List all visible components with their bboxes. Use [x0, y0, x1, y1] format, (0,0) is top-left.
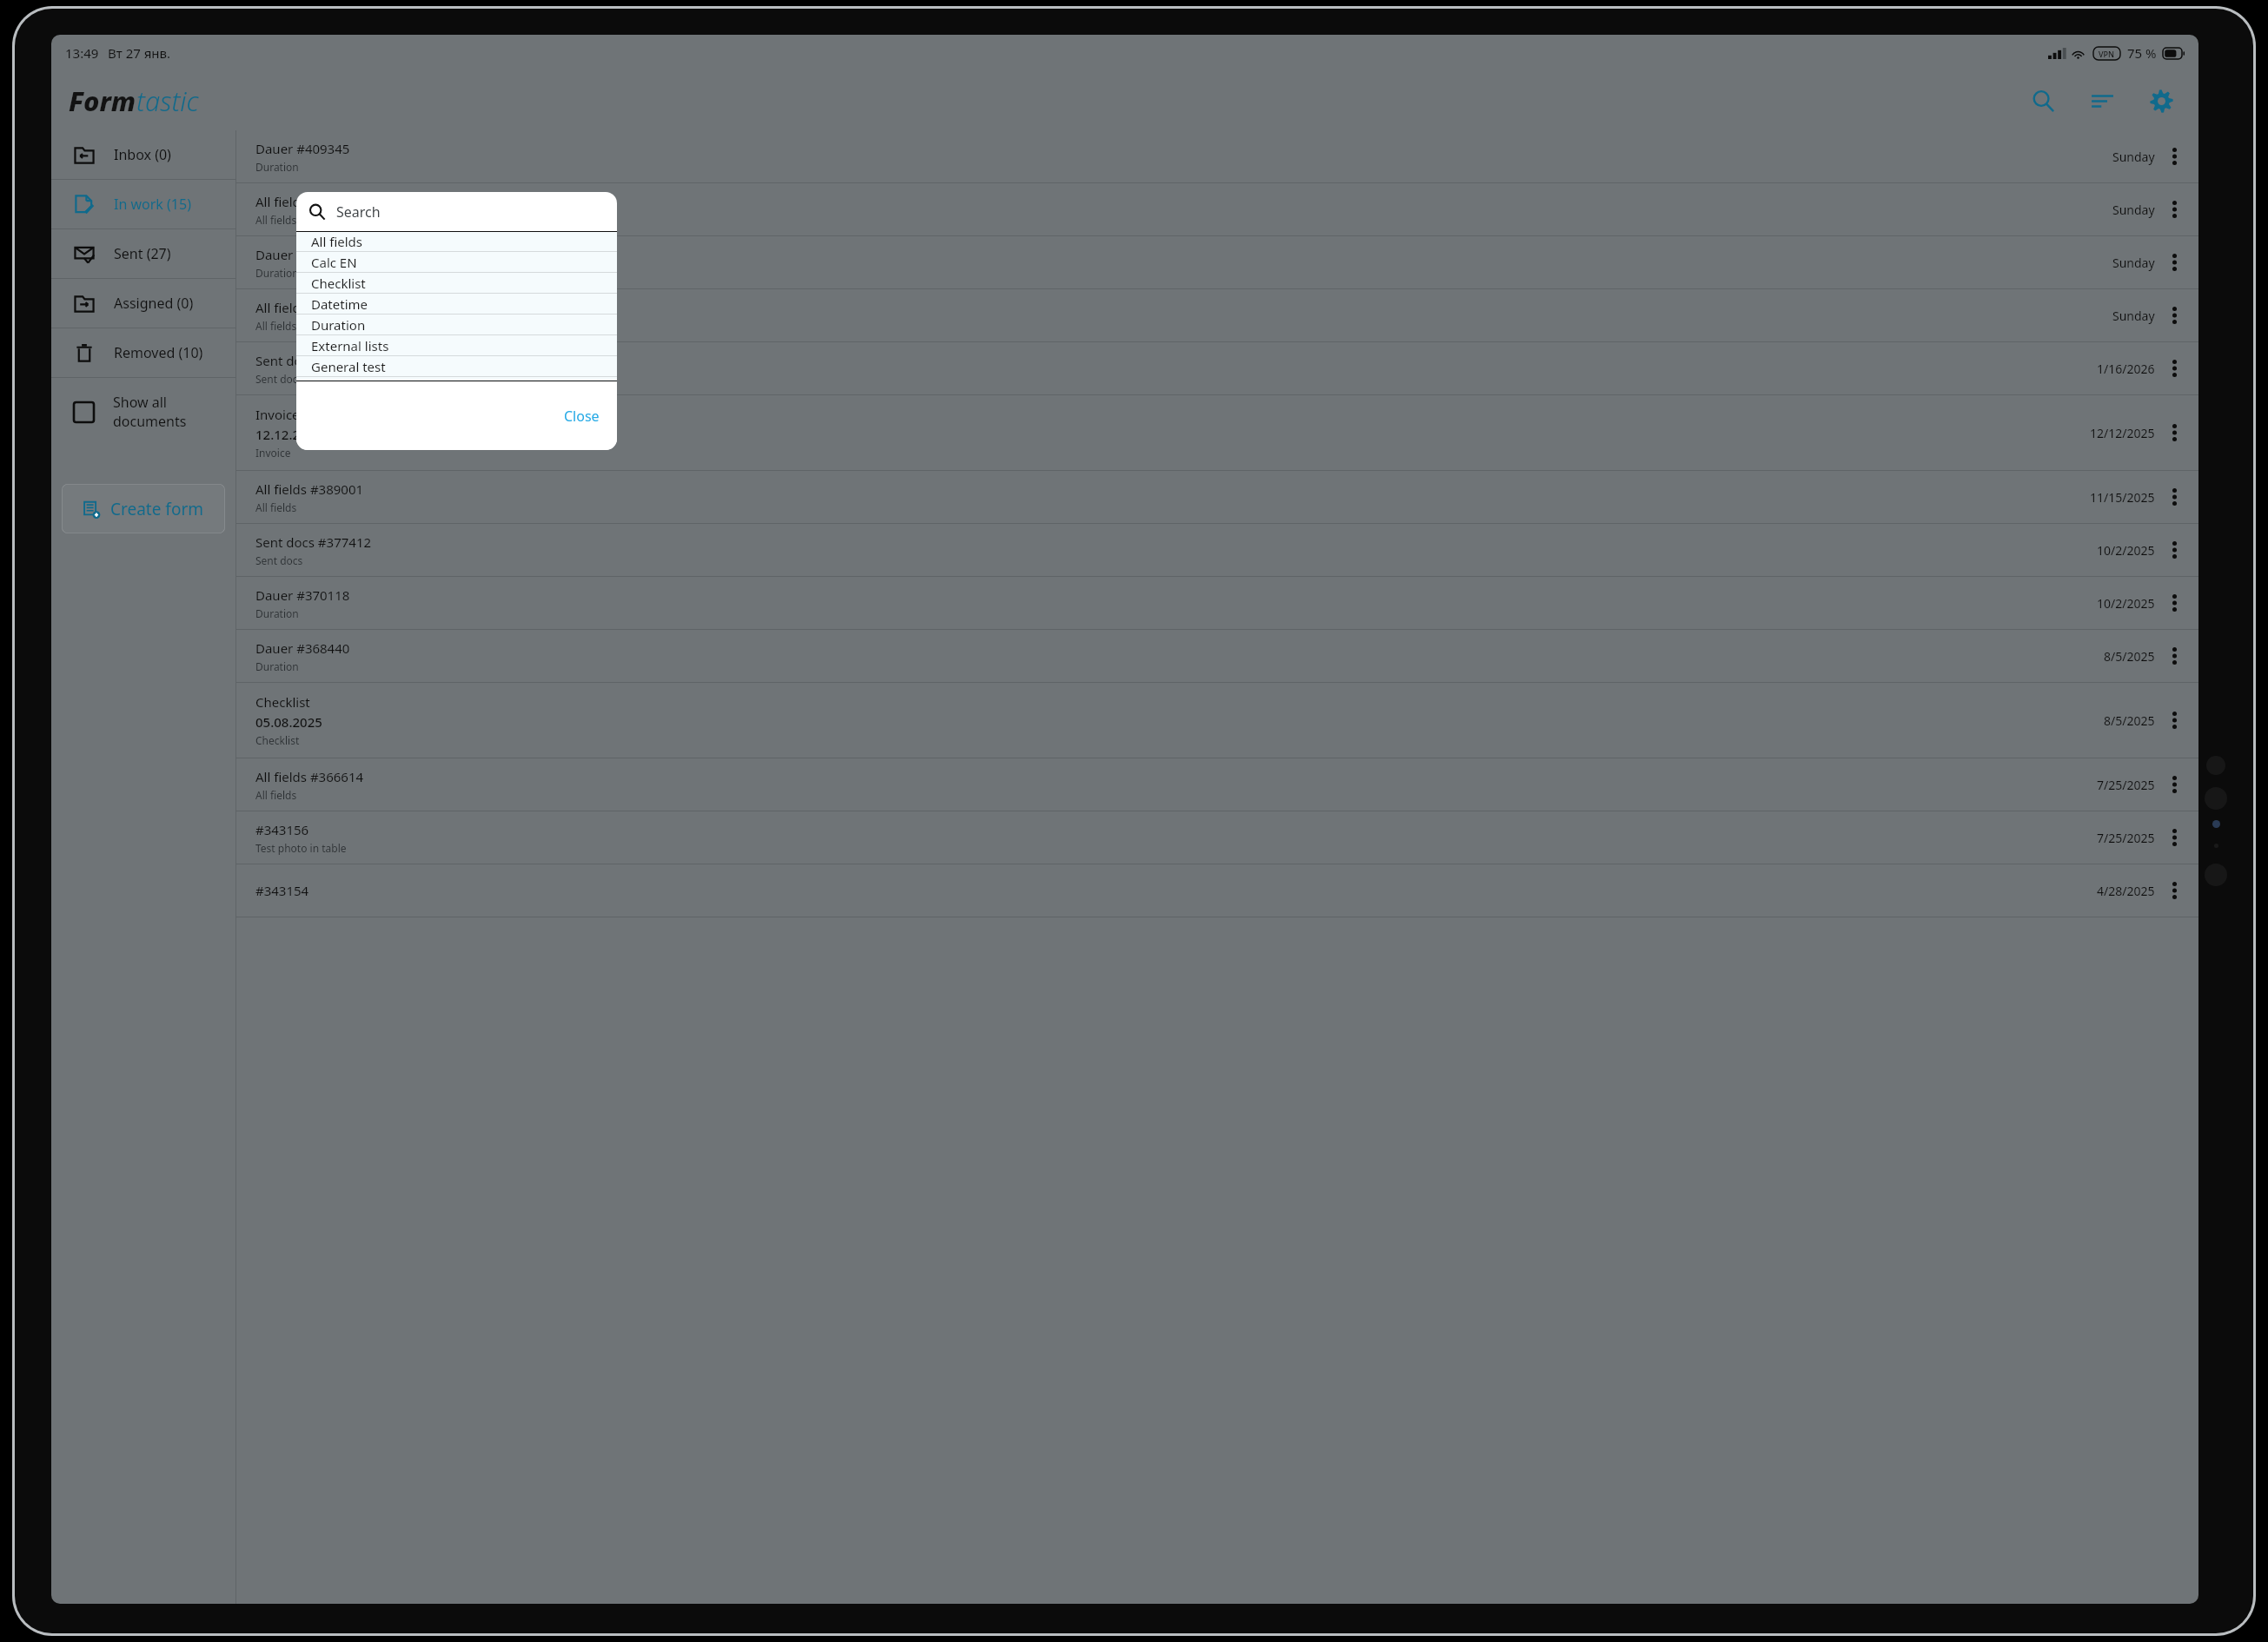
- button[interactable]: Close: [555, 401, 608, 431]
- staticText: Sent (27): [114, 244, 171, 263]
- button[interactable]: Show all documents: [51, 378, 235, 446]
- staticText: Inbox (0): [114, 145, 171, 164]
- button[interactable]: Checklist: [236, 683, 2198, 758]
- staticText: 12/12/2025: [2090, 425, 2155, 441]
- staticText: Removed (10): [114, 343, 203, 362]
- button[interactable]: All fields #409346: [236, 183, 2198, 235]
- button[interactable]: More options: [2155, 183, 2193, 235]
- staticText: Sunday: [2112, 308, 2155, 324]
- staticText: All fields: [255, 213, 297, 227]
- button[interactable]: Duration: [296, 314, 617, 334]
- button[interactable]: All fields #366614: [236, 758, 2198, 811]
- staticText: Sunday: [2112, 202, 2155, 218]
- button[interactable]: More options: [2155, 342, 2193, 394]
- staticText: All fields: [255, 500, 297, 514]
- staticText: Dauer #409344: [255, 246, 350, 263]
- staticText: All fields: [311, 233, 362, 250]
- staticText: 12.12.2025: [255, 426, 322, 443]
- staticText: Dauer #409345: [255, 140, 350, 157]
- button[interactable]: All fields #409343: [236, 289, 2198, 341]
- staticText: Form: [69, 83, 136, 119]
- button[interactable]: #343156: [236, 811, 2198, 864]
- staticText: All fields: [255, 319, 297, 333]
- staticText: All fields #409343: [255, 299, 364, 316]
- button[interactable]: More options: [2155, 577, 2193, 629]
- staticText: Create form: [110, 498, 204, 520]
- staticText: Assigned (0): [114, 294, 194, 313]
- staticText: Checklist: [311, 275, 366, 292]
- button[interactable]: Sent docs #401122: [236, 342, 2198, 394]
- button[interactable]: More options: [2155, 683, 2193, 758]
- staticText: 7/25/2025: [2097, 830, 2155, 846]
- button[interactable]: Inbox (0): [51, 130, 235, 179]
- staticText: Sent docs #377412: [255, 533, 372, 551]
- button[interactable]: Dauer #409345: [236, 130, 2198, 182]
- staticText: 05.08.2025: [255, 713, 322, 731]
- staticText: 7/25/2025: [2097, 777, 2155, 793]
- button[interactable]: All fields: [296, 232, 617, 251]
- staticText: Sent docs: [255, 553, 303, 567]
- staticText: Duration: [255, 606, 299, 620]
- button[interactable]: In work (15): [51, 180, 235, 228]
- button[interactable]: Dauer #370118: [236, 577, 2198, 629]
- button[interactable]: Sort: [2084, 83, 2120, 119]
- staticText: 11/15/2025: [2090, 489, 2155, 506]
- staticText: 75 %: [2127, 44, 2157, 62]
- staticText: Show all documents: [113, 393, 235, 431]
- button[interactable]: External lists: [296, 335, 617, 355]
- staticText: Sunday: [2112, 255, 2155, 271]
- staticText: Вт 27 янв.: [108, 44, 171, 62]
- staticText: #343156: [255, 821, 309, 838]
- staticText: #343154: [255, 882, 309, 899]
- staticText: Datetime: [311, 295, 368, 313]
- button[interactable]: #343154: [236, 864, 2198, 917]
- staticText: Checklist: [255, 693, 310, 711]
- button[interactable]: Calc EN: [296, 252, 617, 272]
- button[interactable]: Datetime: [296, 294, 617, 314]
- button[interactable]: More options: [2155, 236, 2193, 288]
- button[interactable]: More options: [2155, 289, 2193, 341]
- staticText: Duration: [255, 266, 299, 280]
- staticText: 10/2/2025: [2097, 542, 2155, 559]
- button[interactable]: Search: [296, 192, 617, 231]
- button[interactable]: Sent (27): [51, 229, 235, 278]
- button[interactable]: Search: [2025, 83, 2061, 119]
- staticText: 8/5/2025: [2104, 648, 2155, 665]
- staticText: Test photo in table: [255, 841, 347, 855]
- staticText: tastic: [136, 83, 199, 119]
- button[interactable]: More options: [2155, 758, 2193, 811]
- staticText: All fields: [255, 788, 297, 802]
- staticText: Dauer #368440: [255, 639, 350, 657]
- button[interactable]: More options: [2155, 630, 2193, 682]
- staticText: Dauer #370118: [255, 586, 350, 604]
- button[interactable]: Sent docs #377412: [236, 524, 2198, 576]
- button[interactable]: More options: [2155, 395, 2193, 470]
- button[interactable]: Removed (10): [51, 328, 235, 377]
- staticText: Sunday: [2112, 149, 2155, 165]
- staticText: Invoice #398211: [255, 406, 356, 423]
- staticText: All fields #389001: [255, 480, 364, 498]
- button[interactable]: Dauer #409344: [236, 236, 2198, 288]
- button[interactable]: More options: [2155, 864, 2193, 917]
- button[interactable]: Assigned (0): [51, 279, 235, 328]
- button[interactable]: More options: [2155, 130, 2193, 182]
- button[interactable]: More options: [2155, 524, 2193, 576]
- button[interactable]: All fields #389001: [236, 471, 2198, 523]
- button[interactable]: Dauer #368440: [236, 630, 2198, 682]
- staticText: Duration: [311, 316, 366, 334]
- staticText: Duration: [255, 659, 299, 673]
- button[interactable]: Settings: [2143, 83, 2179, 119]
- button[interactable]: General test: [296, 356, 617, 376]
- button[interactable]: More options: [2155, 471, 2193, 523]
- button[interactable]: More options: [2155, 811, 2193, 864]
- staticText: General test: [311, 358, 386, 375]
- staticText: Checklist: [255, 733, 300, 747]
- staticText: Duration: [255, 160, 299, 174]
- button[interactable]: Invoice #398211: [236, 395, 2198, 470]
- staticText: 1/16/2026: [2097, 361, 2155, 377]
- button[interactable]: Checklist: [296, 273, 617, 293]
- button[interactable]: Create form: [62, 484, 225, 533]
- staticText: 10/2/2025: [2097, 595, 2155, 612]
- staticText: In work (15): [114, 195, 191, 214]
- staticText: Sent docs #401122: [255, 352, 372, 369]
